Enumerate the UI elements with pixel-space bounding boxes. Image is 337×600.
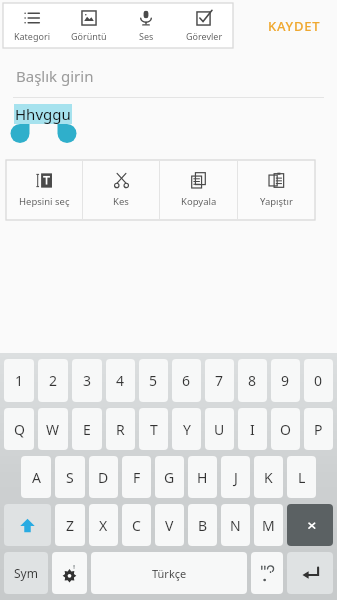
staticText: T (150, 420, 158, 439)
staticText: 5 (149, 371, 158, 390)
button[interactable]: 3 (72, 359, 102, 402)
button[interactable]: T (139, 408, 168, 450)
button[interactable]: N (221, 504, 250, 546)
button[interactable]: Settings (52, 552, 87, 594)
staticText: Görüntü (71, 30, 107, 42)
staticText: 3 (83, 371, 92, 390)
button[interactable]: 4 (106, 359, 135, 402)
staticText: B (198, 516, 208, 535)
button[interactable]: Enter (287, 552, 333, 594)
staticText: V (165, 516, 174, 535)
button[interactable]: B (188, 504, 217, 546)
button[interactable]: W (38, 408, 68, 450)
button[interactable]: X (89, 504, 118, 546)
staticText: Hhvggu (15, 104, 71, 124)
button[interactable]: L (287, 456, 316, 498)
staticText: U (214, 420, 225, 439)
staticText: 9 (281, 371, 290, 390)
staticText: Kategori (14, 30, 50, 42)
button[interactable]: 6 (172, 359, 201, 402)
staticText: I (250, 420, 255, 439)
staticText: P (314, 420, 323, 439)
button[interactable]: 9 (271, 359, 300, 402)
button[interactable]: Q (4, 408, 34, 450)
staticText: Kopyala (181, 195, 217, 208)
staticText: L (298, 468, 306, 487)
button[interactable]: KAYDET (262, 9, 327, 43)
staticText: S (66, 468, 74, 487)
button[interactable]: D (89, 456, 118, 498)
button[interactable]: R (106, 408, 135, 450)
staticText: 8 (248, 371, 257, 390)
button[interactable]: Başlık girin (0, 52, 337, 98)
staticText: Y (183, 420, 191, 439)
staticText: Q (14, 420, 25, 439)
staticText: Görevler (186, 30, 223, 42)
staticText: C (132, 516, 141, 535)
staticText: Kes (113, 195, 129, 208)
button[interactable]: 1 (4, 359, 34, 402)
button[interactable]: Kes (83, 160, 159, 220)
button[interactable]: I (238, 408, 267, 450)
staticText: 6 (182, 371, 191, 390)
button[interactable]: J (221, 456, 250, 498)
staticText: Sym (14, 565, 38, 581)
staticText: Türkçe (152, 566, 187, 581)
button[interactable]: Shift (4, 504, 51, 546)
button[interactable]: Görevler (175, 3, 233, 48)
staticText: Yapıştır (260, 195, 293, 208)
button[interactable]: 7 (205, 359, 234, 402)
button[interactable]: O (271, 408, 300, 450)
button[interactable]: V (155, 504, 184, 546)
staticText: X (99, 516, 108, 535)
button[interactable]: C (122, 504, 151, 546)
button[interactable]: Türkçe (91, 552, 247, 594)
button[interactable]: Yapıştır (238, 160, 315, 220)
button[interactable]: Ses (117, 3, 175, 48)
button[interactable]: U (205, 408, 234, 450)
staticText: M (262, 516, 275, 535)
button[interactable]: 0 (304, 359, 333, 402)
staticText: G (164, 468, 175, 487)
staticText: 4 (116, 371, 125, 390)
staticText: D (98, 468, 109, 487)
staticText: 2 (49, 371, 58, 390)
staticText: H (197, 468, 208, 487)
staticText: 1 (15, 371, 24, 390)
button[interactable]: Hepsini seç (6, 160, 82, 220)
staticText: Hepsini seç (19, 195, 70, 208)
button[interactable]: M (254, 504, 283, 546)
button[interactable]: Y (172, 408, 201, 450)
button[interactable]: Backspace (287, 504, 333, 546)
button[interactable]: H (188, 456, 217, 498)
button[interactable]: 5 (139, 359, 168, 402)
button[interactable]: Kopyala (160, 160, 237, 220)
button[interactable]: Kategori (3, 3, 60, 48)
button[interactable]: Sym (4, 552, 48, 594)
button[interactable]: A (21, 456, 51, 498)
button[interactable]: F (122, 456, 151, 498)
button[interactable]: Punctuation (251, 552, 283, 594)
staticText: E (83, 420, 91, 439)
staticText: 7 (215, 371, 224, 390)
button[interactable]: S (55, 456, 85, 498)
button[interactable]: P (304, 408, 333, 450)
staticText: F (133, 468, 141, 487)
button[interactable]: E (72, 408, 102, 450)
button[interactable]: 2 (38, 359, 68, 402)
button[interactable]: K (254, 456, 283, 498)
staticText: Başlık girin (16, 66, 94, 86)
button[interactable]: Hhvggu (14, 104, 72, 124)
staticText: R (116, 420, 125, 439)
staticText: N (230, 516, 241, 535)
staticText: O (280, 420, 291, 439)
staticText: Z (66, 516, 75, 535)
button[interactable]: Görüntü (60, 3, 117, 48)
button[interactable]: 8 (238, 359, 267, 402)
button[interactable]: Z (55, 504, 85, 546)
button[interactable]: G (155, 456, 184, 498)
staticText: J (234, 468, 238, 487)
staticText: Ses (139, 30, 154, 42)
staticText: KAYDET (268, 17, 321, 35)
staticText: A (32, 468, 41, 487)
